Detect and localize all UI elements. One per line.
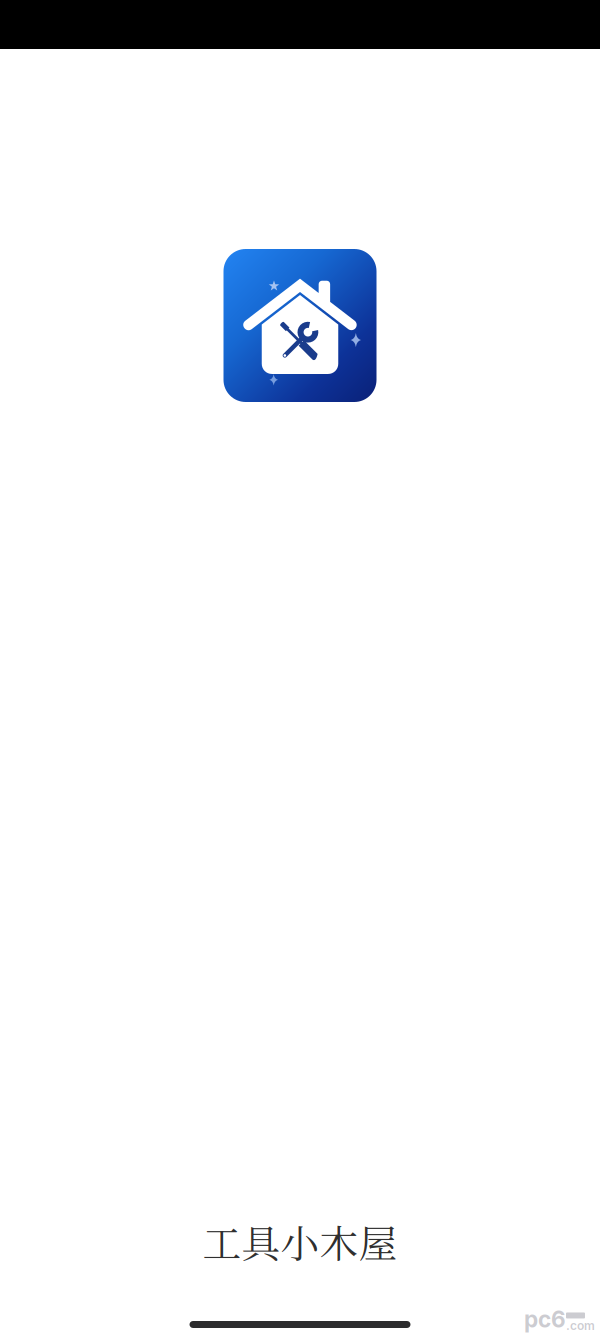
staticText: pc6 xyxy=(524,1306,566,1333)
staticText: 工具小木屋 xyxy=(202,1213,397,1269)
staticText: .com xyxy=(566,1318,595,1333)
